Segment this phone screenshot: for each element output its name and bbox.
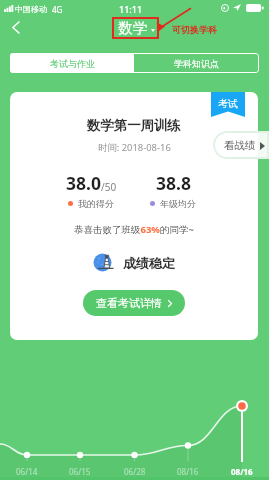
staticText: 可切换学科: [172, 24, 217, 35]
staticText: 38.0: [66, 171, 101, 195]
button[interactable]: 考试与作业: [10, 53, 134, 73]
staticText: 学科知识点: [174, 58, 219, 69]
staticText: 年级均分: [160, 198, 196, 209]
button[interactable]: Back: [3, 15, 27, 39]
button[interactable]: 查看考试详情: [83, 290, 185, 316]
staticText: 06/15: [69, 466, 91, 477]
staticText: 数学: [118, 19, 147, 37]
staticText: 恭喜击败了班级63%的同学~: [74, 223, 194, 236]
staticText: 11:11: [119, 3, 143, 15]
button[interactable]: 学科知识点: [134, 53, 259, 73]
staticText: 中国移动: [15, 4, 47, 14]
staticText: 我的得分: [78, 198, 114, 209]
staticText: 06/28: [124, 466, 146, 477]
staticText: 数学第一周训练: [87, 117, 181, 134]
staticText: 08/16: [231, 466, 253, 477]
staticText: /50: [101, 180, 117, 194]
staticText: 看战绩: [224, 139, 256, 152]
staticText: 考试与作业: [50, 58, 95, 69]
staticText: 成绩稳定: [123, 255, 175, 271]
staticText: 06/14: [16, 466, 38, 477]
staticText: 考试: [218, 97, 238, 110]
button[interactable]: 看战绩: [213, 131, 269, 159]
button[interactable]: 数学: [112, 17, 159, 39]
staticText: 时间: 2018-08-16: [98, 141, 171, 154]
staticText: 38.8: [156, 171, 191, 195]
staticText: 08/16: [177, 466, 199, 477]
staticText: 4G: [52, 4, 63, 15]
staticText: 查看考试详情: [96, 296, 162, 310]
